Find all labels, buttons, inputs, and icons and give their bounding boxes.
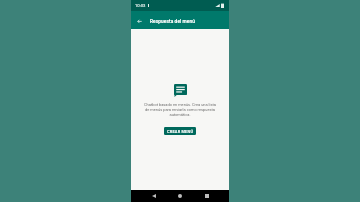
staticText: CREAR MENÚ (167, 129, 194, 134)
staticText: 10:03 (135, 3, 146, 8)
button[interactable]: Home (172, 190, 187, 202)
button[interactable]: Back (146, 190, 161, 202)
button[interactable]: Back (134, 15, 145, 26)
button[interactable]: CREAR MENÚ (164, 127, 196, 135)
button[interactable]: Recent apps (199, 190, 214, 202)
staticText: Respuesta del menú (150, 19, 195, 25)
staticText: Chatbot basado en menús. Crea una lista … (142, 102, 218, 117)
